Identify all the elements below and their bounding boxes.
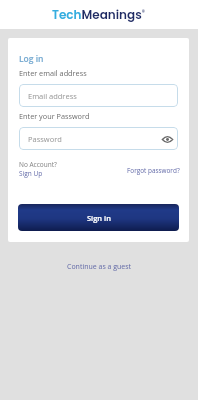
button[interactable]: Show password: [160, 132, 174, 146]
button[interactable]: Continue as a guest: [67, 262, 132, 272]
button[interactable]: Sign in: [18, 204, 179, 231]
staticText: Enter your Password: [19, 111, 90, 121]
staticText: Log in: [19, 53, 44, 65]
staticText: Enter email address: [19, 68, 87, 78]
staticText: No Account?: [19, 160, 57, 169]
staticText: Sign in: [87, 213, 111, 223]
button[interactable]: Sign Up: [19, 169, 43, 178]
staticText: TechMeanings®: [52, 6, 145, 23]
button[interactable]: Password: [19, 127, 178, 150]
button[interactable]: Email address: [19, 84, 178, 107]
staticText: Password: [28, 134, 62, 144]
staticText: Email address: [28, 91, 77, 101]
button[interactable]: Forgot password?: [127, 166, 180, 175]
